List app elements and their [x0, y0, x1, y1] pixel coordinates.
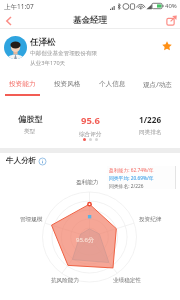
staticText: 95.6 — [81, 114, 100, 127]
staticText: 同类排名 — [139, 129, 162, 136]
staticText: 同类平均: 20.69%/年 — [109, 175, 154, 182]
staticText: 盈利能力 — [76, 179, 99, 186]
button[interactable]: 投资能力 — [0, 74, 45, 94]
button[interactable]: 1/226 — [120, 110, 180, 138]
staticText: 95.6分 — [76, 236, 94, 244]
button[interactable]: Favorite — [158, 37, 176, 55]
button[interactable]: 偏股型 — [0, 110, 60, 138]
staticText: 管理规模 — [20, 216, 43, 223]
staticText: 任泽松 — [30, 37, 56, 48]
button[interactable]: Info — [38, 157, 46, 165]
staticText: 牛人分析 — [6, 156, 36, 165]
staticText: 类型 — [24, 128, 36, 135]
staticText: 综合评分 — [79, 131, 102, 138]
staticText: 从业3年170天 — [30, 59, 66, 67]
button[interactable]: 投资风格 — [45, 74, 90, 94]
staticText: 观点/动态 — [143, 80, 172, 89]
staticText: 盈利能力: 62.74%/年 — [109, 167, 154, 174]
button[interactable]: 95.6 — [60, 110, 120, 138]
button[interactable]: Share — [162, 12, 180, 29]
staticText: 投资能力 — [9, 80, 36, 88]
staticText: 抗风险能力 — [51, 277, 79, 284]
staticText: 40% — [165, 2, 177, 10]
staticText: 业绩稳定性 — [113, 277, 141, 284]
button[interactable]: 观点/动态 — [135, 74, 180, 94]
staticText: 中邮创业基金管理股份有限 — [30, 50, 98, 57]
button[interactable]: Back — [0, 12, 17, 29]
staticText: 基金经理 — [73, 15, 107, 26]
staticText: 投资纪律 — [139, 216, 162, 223]
staticText: 个人信息 — [99, 80, 126, 88]
staticText: 偏股型 — [18, 114, 43, 124]
staticText: 1/226 — [139, 114, 162, 125]
staticText: 上午11:07 — [4, 2, 34, 11]
button[interactable]: 个人信息 — [90, 74, 135, 94]
staticText: 同类排名: 2/226 — [109, 183, 144, 190]
staticText: 投资风格 — [54, 80, 81, 88]
